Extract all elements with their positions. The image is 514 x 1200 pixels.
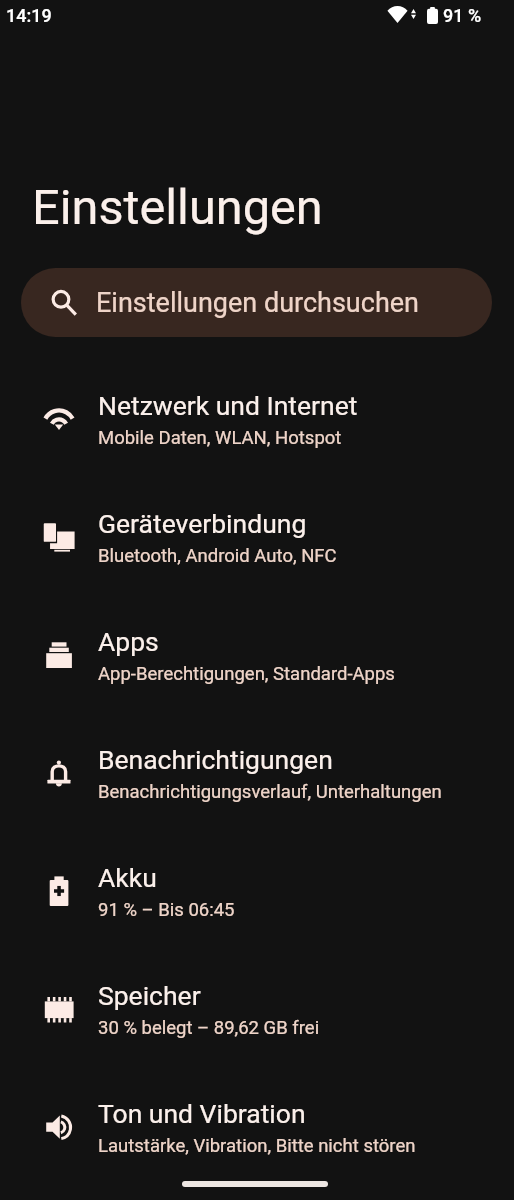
button[interactable]: Benachrichtigungen (0, 714, 514, 832)
button[interactable]: Ton und Vibration (0, 1068, 514, 1186)
staticText: Mobile Daten, WLAN, Hotspot (98, 427, 342, 449)
other: Geräteverbindung (41, 519, 77, 555)
staticText: 91 % – Bis 06:45 (98, 899, 235, 921)
staticText: 30 % belegt – 89,62 GB frei (98, 1017, 320, 1039)
staticText: Speicher (98, 980, 201, 1011)
staticText: Apps (98, 626, 159, 657)
staticText: Benachrichtigungen (98, 744, 333, 775)
other: Netzwerk und Internet (41, 401, 77, 437)
button[interactable]: Akku (0, 832, 514, 950)
button[interactable]: Geräteverbindung (0, 478, 514, 596)
button[interactable]: Apps (0, 596, 514, 714)
other: Akku (41, 873, 77, 909)
button[interactable]: Einstellungen durchsuchen (21, 268, 492, 337)
staticText: Benachrichtigungsverlauf, Unterhaltungen (98, 781, 442, 803)
other: Ton und Vibration (41, 1109, 77, 1145)
staticText: Ton und Vibration (98, 1098, 306, 1129)
staticText: Lautstärke, Vibration, Bitte nicht störe… (98, 1135, 416, 1157)
staticText: Geräteverbindung (98, 508, 307, 539)
staticText: Einstellungen (32, 179, 323, 236)
other: Benachrichtigungen (41, 755, 77, 791)
staticText: Akku (98, 862, 157, 893)
other: Apps (41, 637, 77, 673)
staticText: App-Berechtigungen, Standard-Apps (98, 663, 395, 685)
staticText: Netzwerk und Internet (98, 390, 358, 421)
button[interactable]: Netzwerk und Internet (0, 360, 514, 478)
other: Speicher (41, 991, 77, 1027)
staticText: 91 % (443, 5, 482, 26)
staticText: 14:19 (6, 5, 52, 26)
button[interactable]: Speicher (0, 950, 514, 1068)
staticText: Einstellungen durchsuchen (96, 287, 419, 319)
staticText: Bluetooth, Android Auto, NFC (98, 545, 337, 567)
